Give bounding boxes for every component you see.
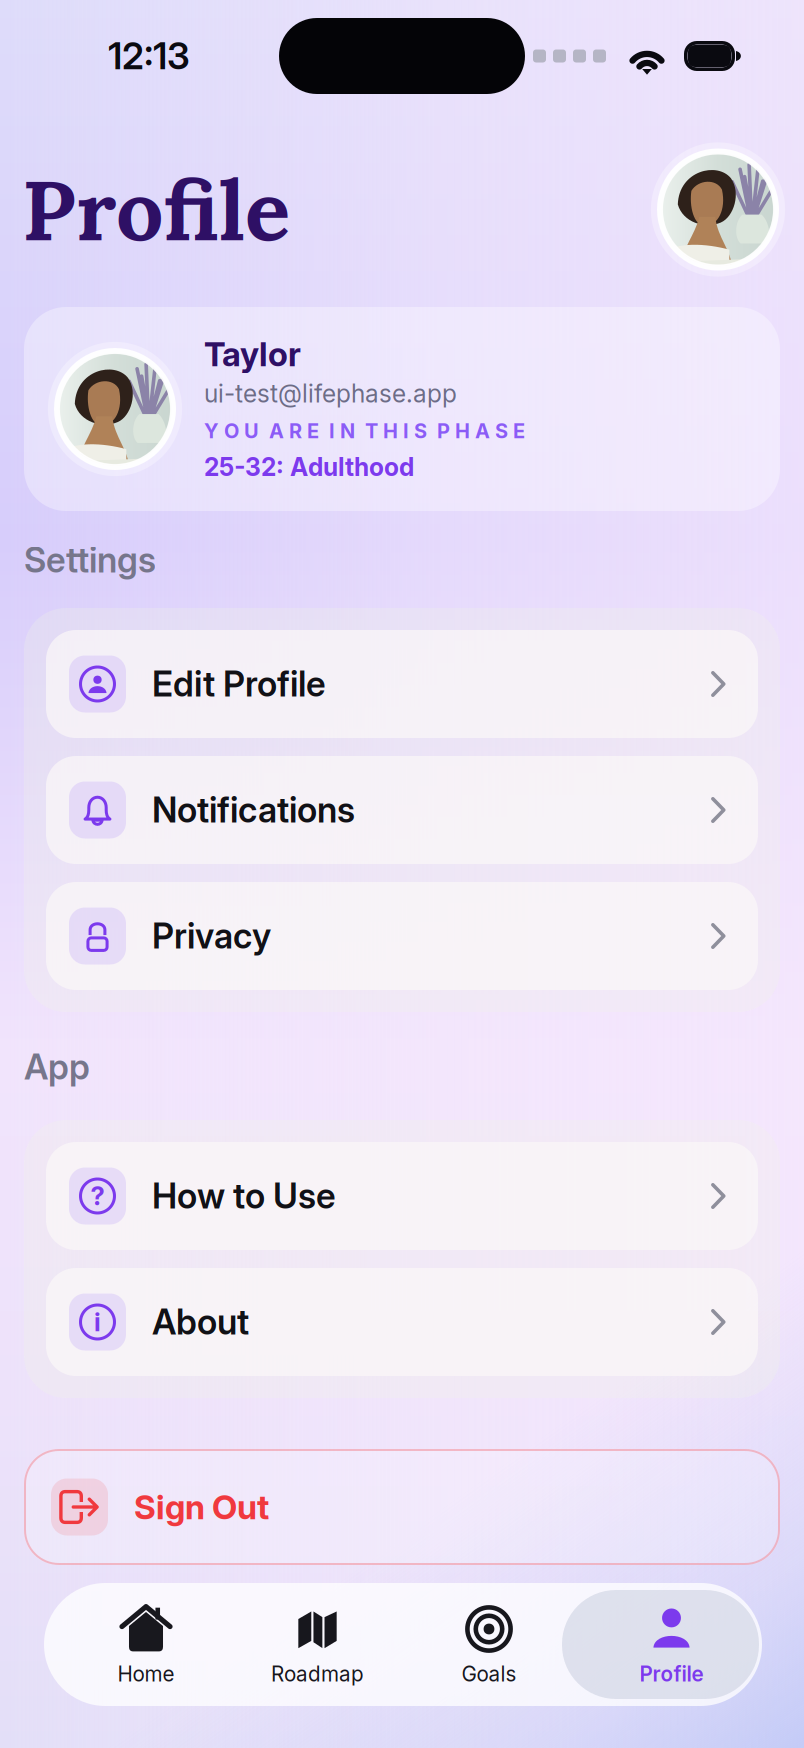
button[interactable]: Notifications (46, 756, 758, 864)
staticText: Y O U A R E I N T H I S P H A S E (204, 419, 525, 443)
staticText: 25-32: Adulthood (204, 452, 414, 482)
staticText: How to Use (152, 1175, 336, 1217)
button[interactable]: ? (46, 1142, 758, 1250)
button[interactable]: Roadmap (241, 1590, 394, 1699)
button[interactable]: Privacy (46, 882, 758, 990)
staticText: Notifications (152, 789, 355, 831)
button[interactable]: Sign Out (0, 1449, 804, 1565)
staticText: Profile (22, 156, 290, 263)
button[interactable]: Account photo (657, 148, 804, 270)
button[interactable]: Home (51, 1590, 241, 1699)
staticText: i (94, 1307, 101, 1337)
staticText: About (152, 1301, 249, 1343)
staticText: App (24, 1046, 90, 1088)
staticText: Roadmap (271, 1661, 364, 1686)
staticText: Taylor (204, 334, 301, 374)
staticText: Home (117, 1661, 174, 1686)
staticText: Edit Profile (152, 663, 326, 705)
staticText: 12:13 (108, 34, 190, 78)
button[interactable]: Goals (394, 1590, 584, 1699)
button[interactable]: i (46, 1268, 758, 1376)
button[interactable]: Profile (584, 1590, 759, 1699)
staticText: Settings (24, 539, 156, 581)
staticText: Goals (461, 1661, 516, 1686)
staticText: Sign Out (134, 1487, 269, 1527)
staticText: ui-test@lifephase.app (204, 379, 457, 408)
staticText: Privacy (152, 915, 271, 957)
button[interactable]: Edit Profile (46, 630, 758, 738)
staticText: Profile (639, 1661, 703, 1686)
staticText: ? (90, 1181, 104, 1211)
